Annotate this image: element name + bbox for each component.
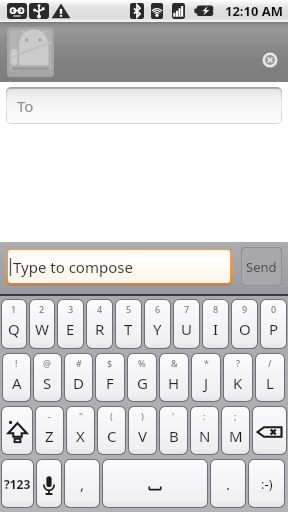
staticText: E	[66, 319, 75, 339]
button[interactable]: Delete	[253, 407, 286, 454]
button[interactable]: $	[96, 354, 124, 401]
button[interactable]: .	[211, 460, 245, 507]
button[interactable]: ?123	[2, 460, 33, 507]
staticText: N	[199, 426, 211, 446]
staticText: 7	[184, 303, 190, 315]
staticText: L	[266, 373, 274, 393]
button[interactable]: %	[128, 354, 156, 401]
staticText: K	[233, 373, 243, 393]
button[interactable]: "	[67, 407, 94, 454]
staticText: Z	[45, 426, 54, 446]
button[interactable]: Type to compose	[8, 250, 230, 283]
staticText: %	[138, 357, 146, 369]
staticText: F	[106, 373, 114, 393]
staticText: 6	[155, 303, 161, 315]
staticText: @	[43, 357, 52, 369]
staticText: #	[76, 357, 82, 369]
button[interactable]: #	[65, 354, 92, 401]
button[interactable]: Space	[103, 460, 207, 507]
staticText: D	[73, 373, 84, 393]
staticText: U	[181, 319, 192, 339]
staticText: ?123	[4, 476, 31, 492]
staticText: &	[171, 357, 178, 369]
staticText: :-)	[261, 475, 273, 493]
staticText: V	[138, 426, 148, 446]
button[interactable]: )	[129, 407, 156, 454]
staticText: 4	[97, 303, 103, 315]
staticText: Type to compose	[13, 257, 133, 277]
button[interactable]: @	[34, 354, 61, 401]
button[interactable]: To	[7, 89, 281, 123]
staticText: ?	[236, 357, 241, 369]
button[interactable]: *	[192, 354, 220, 401]
button[interactable]: ;	[222, 407, 249, 454]
staticText: Y	[153, 319, 162, 339]
button[interactable]: Contact photo	[7, 27, 54, 77]
button[interactable]: ?	[224, 354, 252, 401]
staticText: -	[48, 410, 51, 422]
staticText: 8	[213, 303, 219, 315]
staticText: *	[204, 357, 209, 369]
staticText: S	[43, 373, 52, 393]
button[interactable]: /	[256, 354, 284, 401]
staticText: :	[203, 410, 206, 422]
staticText: 5	[126, 303, 132, 315]
staticText: I	[213, 319, 219, 339]
staticText: C	[107, 426, 117, 446]
staticText: ;	[234, 410, 237, 422]
button[interactable]: :	[191, 407, 218, 454]
staticText: M	[229, 426, 243, 446]
staticText: '	[172, 410, 175, 422]
button[interactable]: -	[36, 407, 63, 454]
staticText: 2	[39, 303, 45, 315]
button[interactable]: Send	[241, 247, 282, 286]
button[interactable]: Voice input	[37, 460, 61, 507]
staticText: .	[226, 474, 231, 494]
button[interactable]: &	[160, 354, 188, 401]
staticText: To	[17, 96, 34, 116]
staticText: 3	[68, 303, 74, 315]
button[interactable]: 2	[30, 300, 54, 348]
staticText: G	[137, 373, 148, 393]
button[interactable]: 5	[116, 300, 141, 348]
staticText: T	[124, 319, 133, 339]
staticText: !	[15, 357, 18, 369]
staticText: $	[107, 357, 113, 369]
button[interactable]: 4	[87, 300, 112, 348]
staticText: 12:10 AM	[225, 2, 284, 20]
button[interactable]: '	[160, 407, 187, 454]
button[interactable]: Shift	[2, 407, 32, 454]
button[interactable]: 1	[2, 300, 26, 348]
staticText: O	[239, 319, 251, 339]
staticText: P	[269, 319, 279, 339]
button[interactable]: (	[98, 407, 125, 454]
staticText: J	[204, 373, 209, 393]
staticText: /	[268, 357, 272, 369]
button[interactable]: Remove recipient	[259, 49, 281, 71]
staticText: A	[12, 373, 22, 393]
button[interactable]: :-)	[249, 460, 284, 507]
button[interactable]: !	[3, 354, 30, 401]
staticText: X	[76, 426, 85, 446]
button[interactable]: 0	[261, 300, 286, 348]
staticText: (	[110, 410, 113, 422]
button[interactable]: 6	[145, 300, 170, 348]
staticText: R	[95, 319, 105, 339]
staticText: "	[79, 410, 83, 422]
staticText: 9	[242, 303, 248, 315]
staticText: 0	[271, 303, 277, 315]
staticText: H	[168, 373, 180, 393]
button[interactable]: ,	[65, 460, 99, 507]
staticText: Q	[8, 319, 20, 339]
button[interactable]: 8	[203, 300, 228, 348]
staticText: Send	[246, 258, 277, 276]
button[interactable]: 9	[232, 300, 257, 348]
staticText: 1	[11, 303, 17, 315]
button[interactable]: 3	[58, 300, 83, 348]
staticText: )	[141, 410, 144, 422]
button[interactable]: 7	[174, 300, 199, 348]
staticText: W	[35, 319, 49, 339]
staticText: B	[169, 426, 179, 446]
staticText: ,	[80, 474, 85, 494]
